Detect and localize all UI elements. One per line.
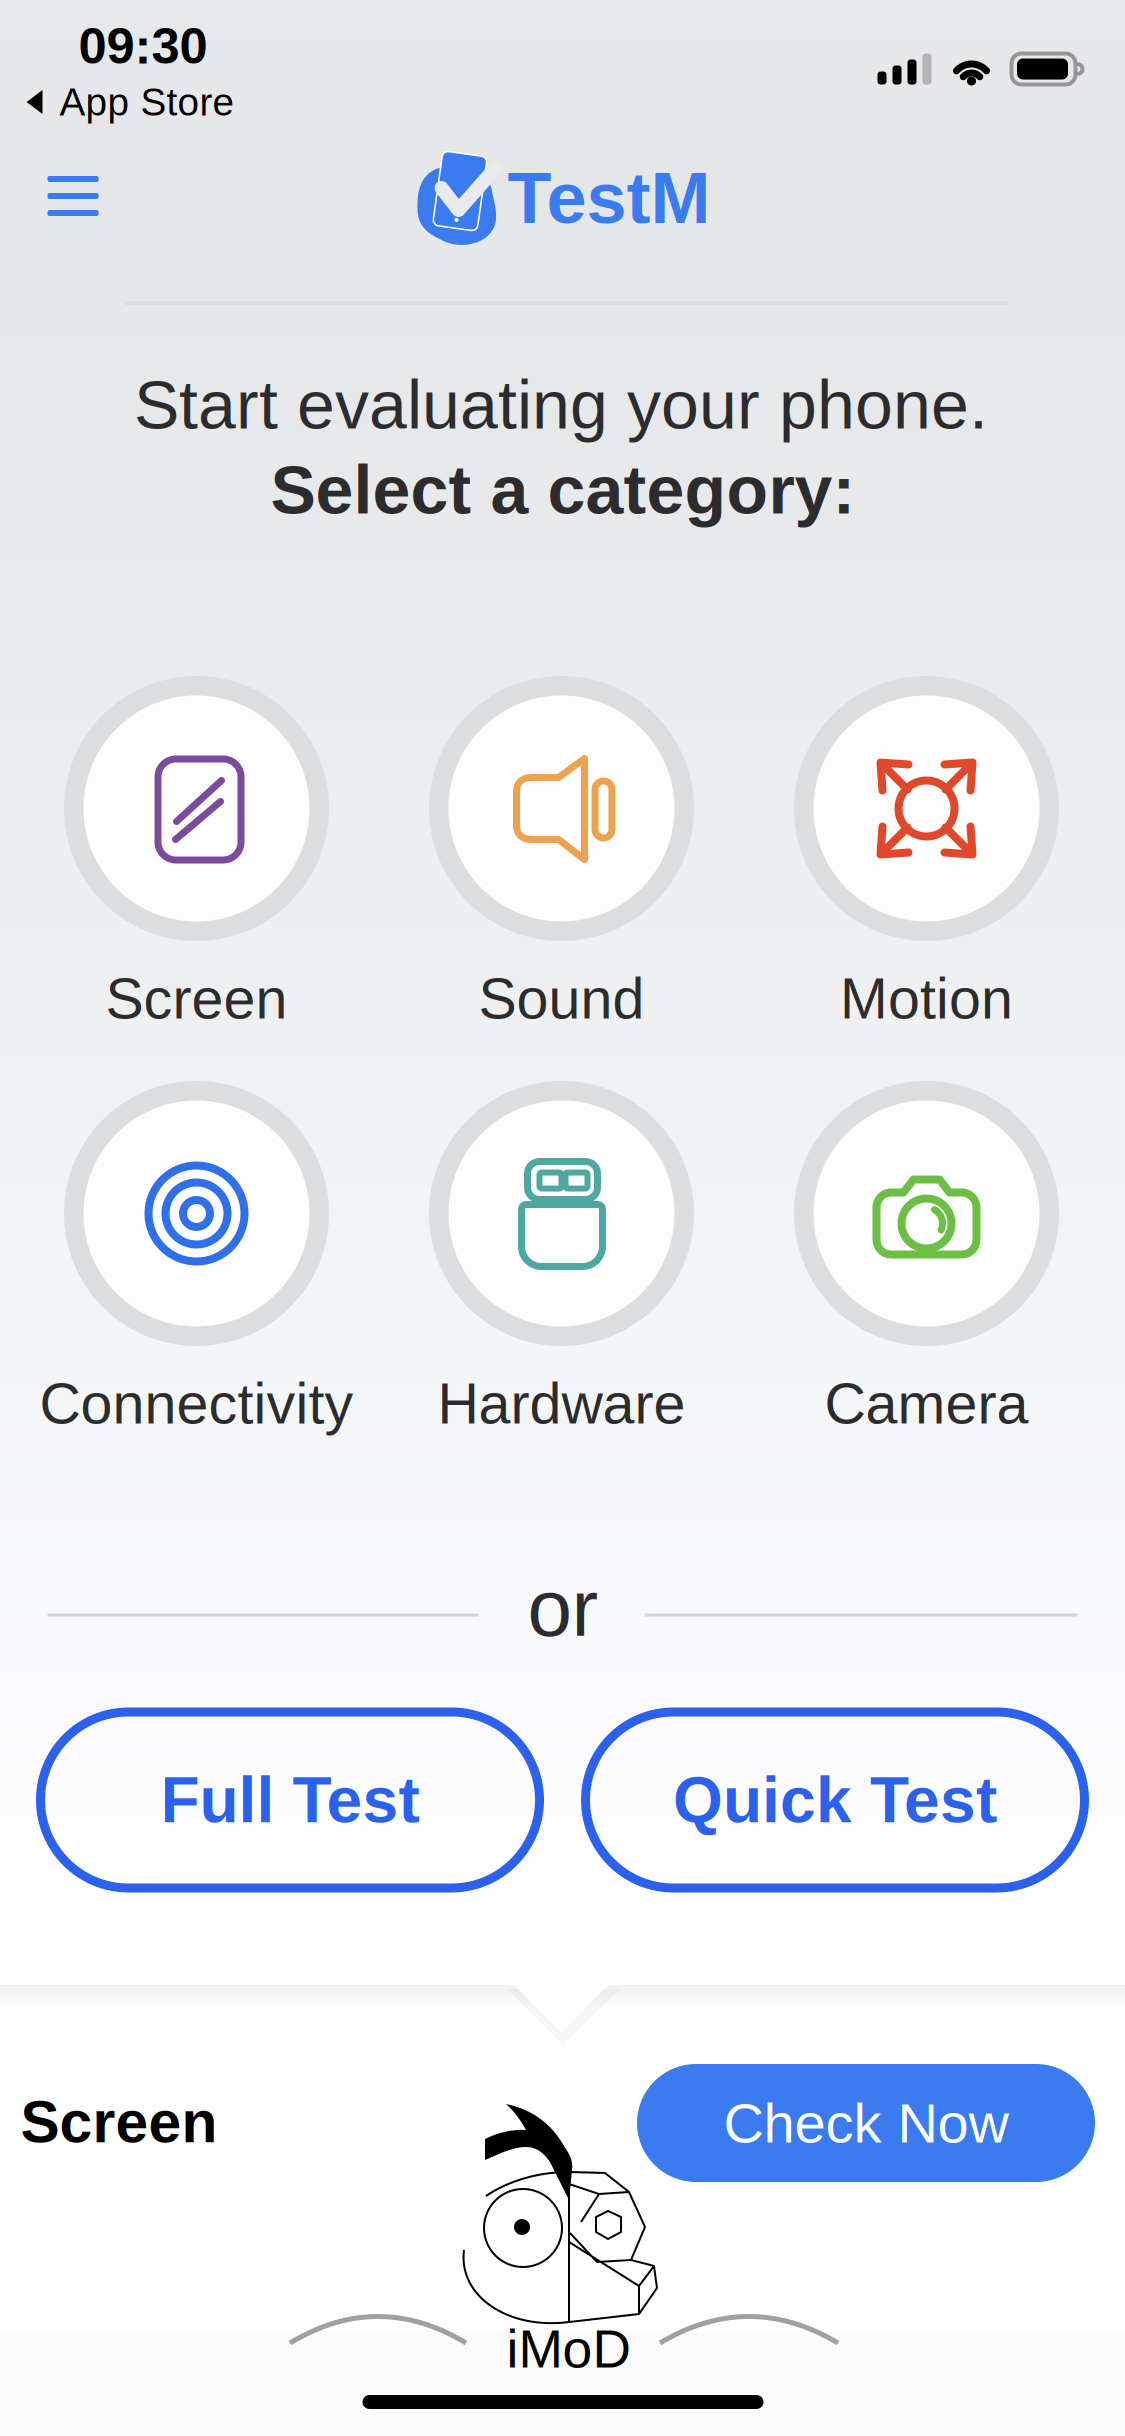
staticText: Start evaluating your phone. bbox=[134, 367, 988, 443]
staticText: TestM bbox=[507, 158, 710, 238]
button[interactable]: Quick Test bbox=[581, 1707, 1089, 1892]
staticText: App Store bbox=[59, 80, 234, 124]
staticText: or bbox=[527, 1563, 598, 1653]
button[interactable]: Hardware bbox=[379, 1081, 744, 1426]
staticText: Connectivity bbox=[39, 1371, 353, 1436]
staticText: Motion bbox=[840, 966, 1013, 1031]
staticText: Sound bbox=[478, 966, 644, 1031]
staticText: Camera bbox=[824, 1371, 1028, 1436]
staticText: 09:30 bbox=[78, 18, 207, 74]
button[interactable]: Sound bbox=[379, 676, 744, 1021]
button[interactable]: Connectivity bbox=[14, 1081, 379, 1426]
staticText: Hardware bbox=[437, 1371, 685, 1436]
button[interactable]: Motion bbox=[744, 676, 1109, 1021]
button[interactable]: Screen bbox=[14, 676, 379, 1021]
button[interactable]: Camera bbox=[744, 1081, 1109, 1426]
staticText: Quick Test bbox=[673, 1764, 997, 1836]
button[interactable]: Check Now bbox=[637, 2064, 1095, 2182]
staticText: iMoD bbox=[506, 2319, 631, 2379]
button[interactable]: Menu bbox=[19, 147, 127, 245]
staticText: Check Now bbox=[723, 2092, 1008, 2154]
staticText: Screen bbox=[20, 2089, 217, 2155]
button[interactable]: Full Test bbox=[36, 1707, 544, 1892]
staticText: Screen bbox=[105, 966, 287, 1031]
staticText: Select a category: bbox=[270, 452, 855, 528]
staticText: Full Test bbox=[160, 1764, 419, 1836]
